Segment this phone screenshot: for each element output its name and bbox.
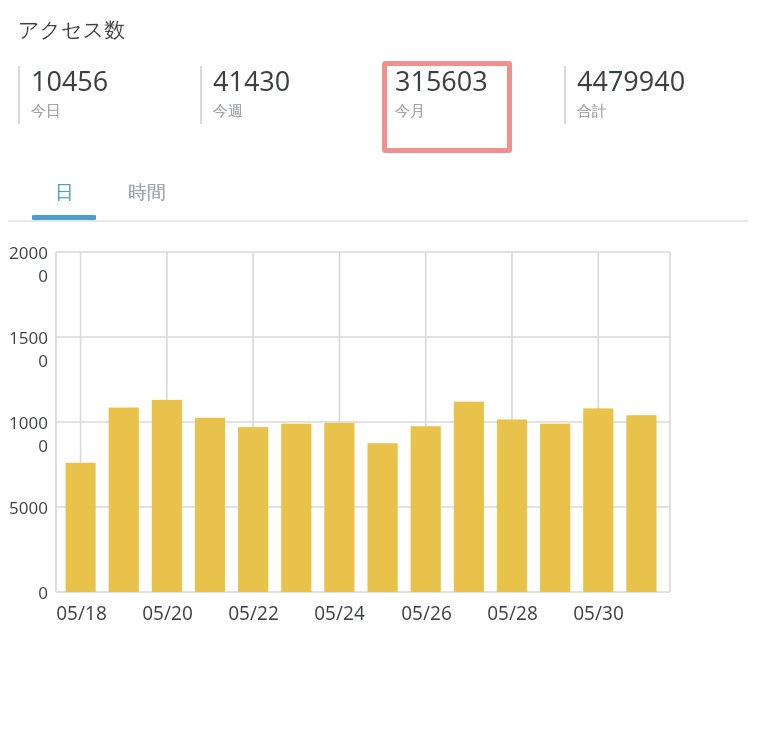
staticText: 41430 [213, 62, 291, 99]
staticText: 今日 [31, 102, 61, 121]
staticText: 10456 [31, 62, 109, 99]
staticText: 今週 [213, 102, 243, 121]
button[interactable]: 41430 [200, 62, 382, 130]
staticText: 05/20 [142, 600, 193, 626]
button[interactable]: 時間 [112, 164, 182, 222]
button[interactable]: 10456 [18, 62, 200, 130]
staticText: 05/26 [401, 600, 452, 626]
staticText: 05/28 [487, 600, 538, 626]
staticText: 今月 [395, 102, 425, 121]
staticText: 05/18 [56, 600, 107, 626]
staticText: 時間 [128, 181, 166, 205]
staticText: 10000 [0, 411, 48, 457]
staticText: アクセス数 [18, 17, 125, 43]
button[interactable]: 日 [32, 164, 96, 222]
staticText: 05/22 [228, 600, 279, 626]
staticText: 5000 [9, 496, 48, 519]
staticText: 05/30 [573, 600, 624, 626]
button[interactable]: 4479940 [564, 62, 746, 130]
staticText: 05/24 [314, 600, 365, 626]
staticText: 20000 [0, 241, 48, 287]
staticText: 合計 [577, 102, 607, 121]
staticText: 0 [38, 581, 48, 604]
staticText: 15000 [0, 326, 48, 372]
button[interactable]: 315603 [382, 62, 564, 130]
staticText: 日 [55, 181, 74, 205]
staticText: 4479940 [577, 62, 686, 99]
staticText: 315603 [395, 62, 488, 99]
